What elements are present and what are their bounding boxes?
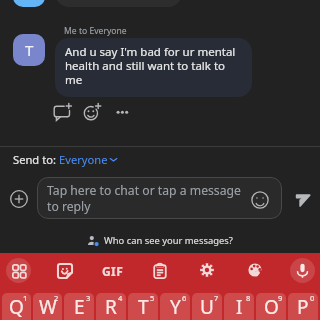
staticText: 7 <box>214 293 219 303</box>
button[interactable]: Apps <box>0 251 37 289</box>
button[interactable]: GIF <box>94 252 132 290</box>
button[interactable]: Stickers <box>46 252 84 290</box>
staticText: Tap here to chat or tap a message to rep… <box>47 182 248 214</box>
button[interactable]: Emoji <box>247 187 273 213</box>
button[interactable]: Who can see your messages? <box>87 234 233 247</box>
button[interactable]: And u say I'm bad for ur mental health a… <box>55 38 252 97</box>
staticText: 4 <box>118 293 123 303</box>
staticText: GIF <box>102 263 124 279</box>
button[interactable]: Send <box>289 185 317 213</box>
staticText: U <box>200 294 214 320</box>
staticText: 8 <box>246 293 251 303</box>
button[interactable]: Clipboard <box>141 252 179 290</box>
button[interactable]: I <box>224 293 254 320</box>
button[interactable]: Add reaction <box>81 101 103 123</box>
staticText: 0 <box>310 293 315 303</box>
staticText: Send to: <box>13 152 59 167</box>
button[interactable]: U <box>192 293 222 320</box>
button[interactable]: Q <box>2 293 31 320</box>
staticText: 1 <box>23 293 28 303</box>
staticText: O <box>264 294 279 320</box>
staticText: Y <box>170 294 181 320</box>
staticText: R <box>105 294 117 320</box>
staticText: E <box>74 294 85 320</box>
button[interactable]: R <box>96 293 126 320</box>
staticText: T <box>25 40 34 60</box>
staticText: T <box>138 294 149 320</box>
button[interactable]: T <box>128 293 158 320</box>
button[interactable]: More options <box>111 101 133 123</box>
staticText: 2 <box>54 293 59 303</box>
staticText: 5 <box>150 293 155 303</box>
button[interactable]: Everyone <box>59 152 119 167</box>
staticText: 3 <box>86 293 91 303</box>
button[interactable]: P <box>288 293 318 320</box>
staticText: And u say I'm bad for ur mental health a… <box>65 44 242 88</box>
button[interactable]: E <box>64 293 94 320</box>
button[interactable]: Reply <box>51 101 73 123</box>
button[interactable]: Tap here to chat or tap a message to rep… <box>37 177 282 219</box>
staticText: 9 <box>278 293 283 303</box>
staticText: W <box>39 294 57 320</box>
button[interactable]: Voice input <box>283 251 320 289</box>
staticText: Me to Everyone <box>64 25 127 37</box>
staticText: 6 <box>182 293 187 303</box>
button[interactable]: W <box>33 293 62 320</box>
staticText: Q <box>9 294 24 320</box>
button[interactable]: Profile T <box>13 34 45 66</box>
button[interactable]: O <box>256 293 286 320</box>
button[interactable]: Themes <box>236 251 274 289</box>
staticText: P <box>297 294 309 320</box>
button[interactable]: Add attachment <box>5 185 33 213</box>
staticText: Everyone <box>59 152 108 167</box>
button[interactable]: Y <box>160 293 190 320</box>
staticText: Who can see your messages? <box>104 234 233 247</box>
button[interactable]: Settings <box>188 251 226 289</box>
staticText: I <box>236 294 243 320</box>
